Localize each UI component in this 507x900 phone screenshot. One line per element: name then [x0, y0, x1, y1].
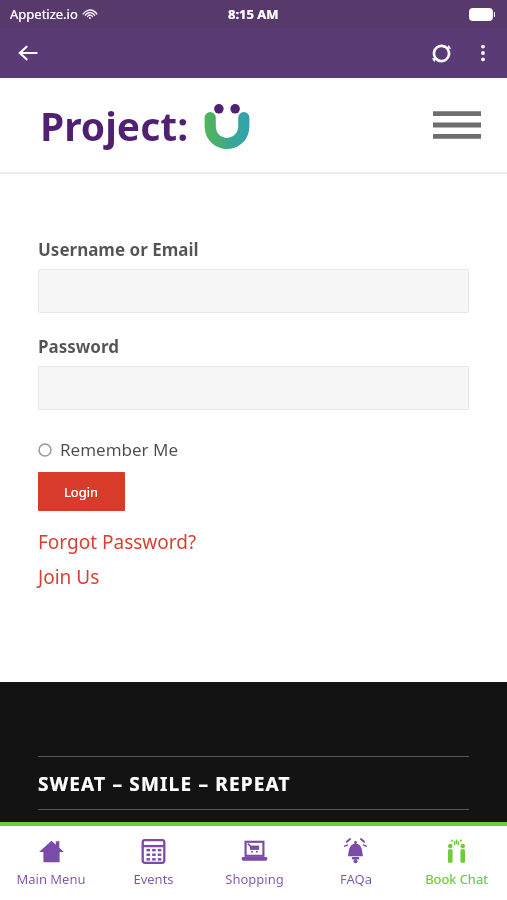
button[interactable]: Back: [8, 33, 48, 73]
staticText: Login: [64, 483, 99, 501]
button[interactable]: Refresh: [419, 31, 463, 75]
staticText: Project:: [40, 99, 189, 152]
staticText: Username or Email: [38, 238, 199, 261]
staticText: 8:15 AM: [228, 5, 279, 23]
button[interactable]: Book Chat: [406, 826, 507, 900]
staticText: Password: [38, 335, 119, 358]
button[interactable]: Menu: [429, 97, 485, 153]
staticText: Remember Me: [60, 438, 179, 461]
button[interactable]: Forgot Password?: [38, 529, 197, 555]
staticText: Join Us: [38, 564, 100, 590]
button[interactable]: Username or Email field: [38, 269, 469, 313]
staticText: Appetize.io: [10, 5, 78, 23]
staticText: Events: [133, 870, 174, 888]
button[interactable]: Join Us: [38, 564, 100, 590]
button[interactable]: Events: [102, 826, 204, 900]
button[interactable]: More options: [463, 33, 503, 73]
button[interactable]: Password field: [38, 366, 469, 410]
staticText: FAQa: [340, 870, 372, 888]
button[interactable]: Login: [38, 472, 125, 511]
staticText: SWEAT – SMILE – REPEAT: [38, 771, 291, 797]
staticText: Forgot Password?: [38, 529, 197, 555]
button[interactable]: Shopping: [204, 826, 305, 900]
button[interactable]: FAQa: [305, 826, 406, 900]
staticText: Book Chat: [425, 870, 488, 888]
staticText: Main Menu: [16, 870, 86, 888]
button[interactable]: Remember Me: [38, 438, 179, 461]
button[interactable]: Main Menu: [0, 826, 102, 900]
staticText: Shopping: [225, 870, 284, 888]
